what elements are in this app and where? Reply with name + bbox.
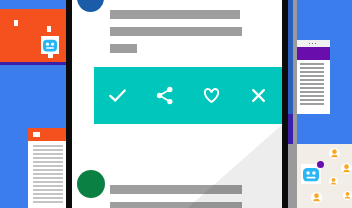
button[interactable]: Approve: [94, 67, 141, 124]
button[interactable]: Dismiss: [235, 67, 282, 124]
button[interactable]: Share: [141, 67, 188, 124]
button[interactable]: Favorite: [188, 67, 235, 124]
